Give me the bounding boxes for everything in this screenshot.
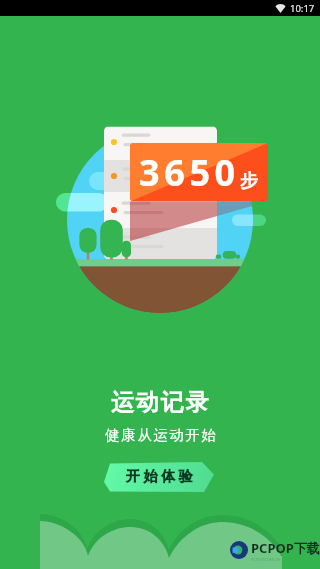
- staticText: 运动记录: [111, 388, 211, 417]
- staticText: 3650: [139, 148, 240, 197]
- button[interactable]: 开始体验: [104, 462, 214, 492]
- staticText: 10:17: [290, 2, 315, 15]
- staticText: PCPOP.COM.CN: [251, 557, 280, 561]
- staticText: PCPOP下载: [251, 539, 320, 557]
- staticText: 开始体验: [126, 468, 197, 486]
- staticText: 步: [240, 170, 258, 193]
- staticText: 健康从运动开始: [105, 426, 218, 444]
